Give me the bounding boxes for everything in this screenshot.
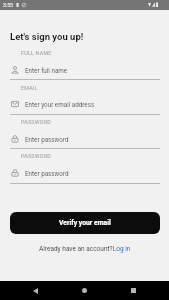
- staticText: 3:55: [3, 2, 14, 8]
- staticText: Enter password: [25, 136, 69, 143]
- button[interactable]: Enter password: [10, 165, 159, 181]
- staticText: Enter your email address: [25, 101, 95, 108]
- staticText: PASSWORD: [21, 153, 51, 159]
- button[interactable]: Enter your email address: [10, 96, 159, 112]
- staticText: Enter full name: [25, 67, 68, 74]
- button[interactable]: Recent apps: [118, 281, 148, 300]
- staticText: Verify your email: [59, 219, 111, 227]
- button[interactable]: Already have an account?Log in: [39, 245, 131, 253]
- button[interactable]: Enter full name: [10, 62, 159, 78]
- staticText: Let's sign you up!: [10, 31, 84, 42]
- button[interactable]: Back: [20, 281, 50, 300]
- button[interactable]: Enter password: [10, 131, 159, 147]
- staticText: EMAIL: [21, 85, 38, 91]
- button[interactable]: Home: [69, 281, 99, 300]
- staticText: PASSWORD: [21, 119, 51, 125]
- staticText: FULL NAME: [21, 50, 52, 56]
- staticText: Enter password: [25, 170, 69, 177]
- button[interactable]: Verify your email: [10, 212, 160, 234]
